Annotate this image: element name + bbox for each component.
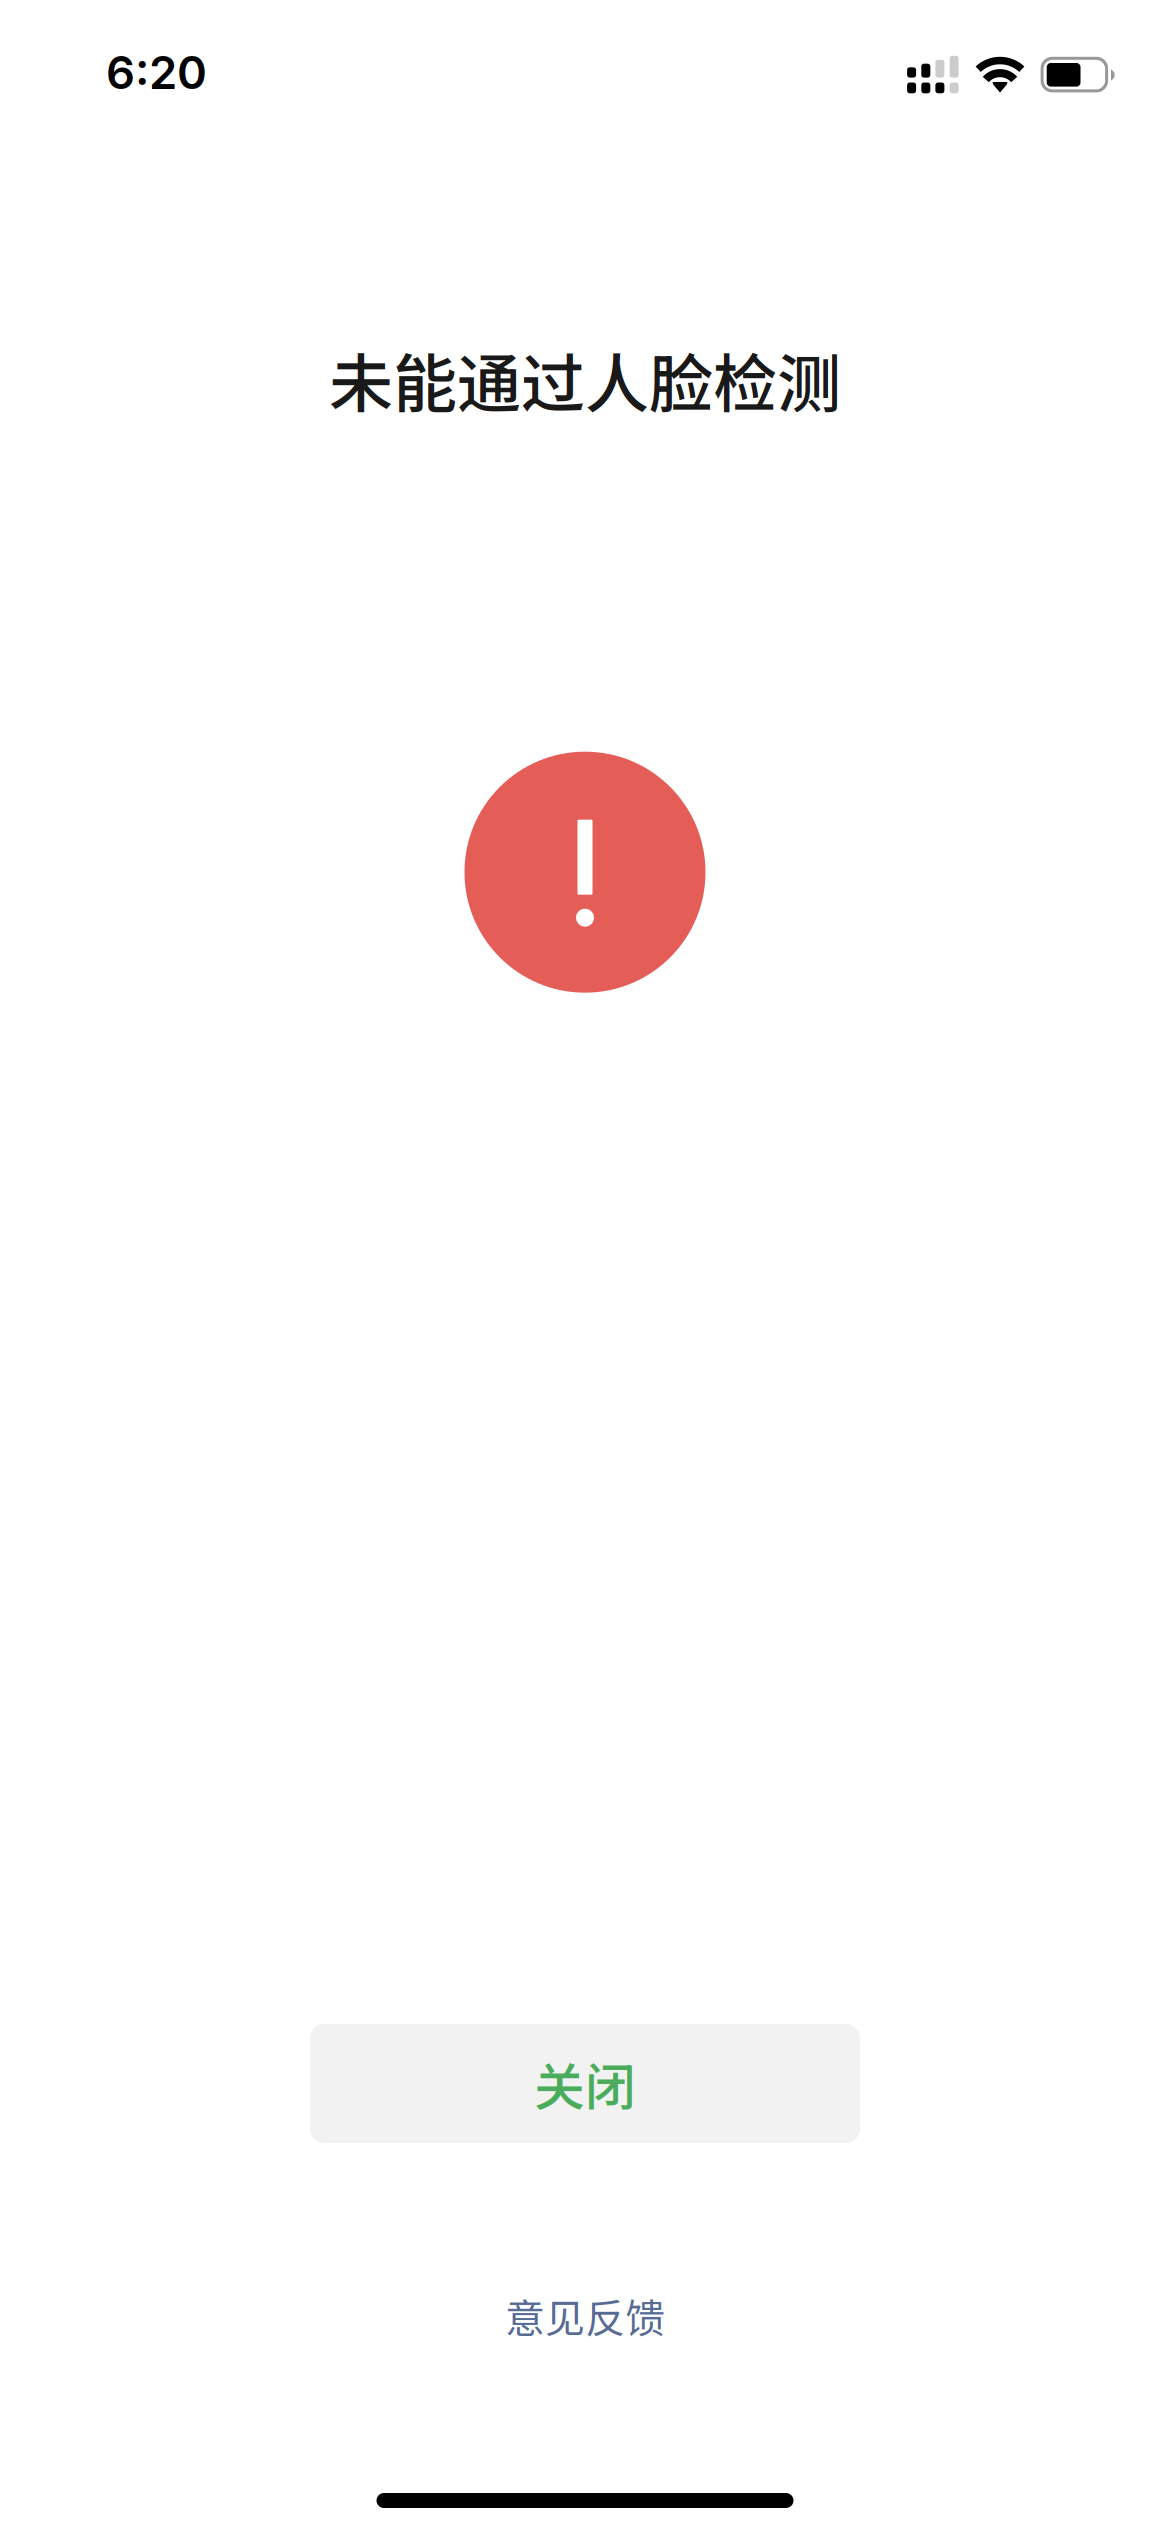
staticText: 未能通过人脸检测 <box>329 333 841 426</box>
staticText: 意见反馈 <box>505 2286 665 2344</box>
button[interactable]: 关闭 <box>310 2024 860 2143</box>
staticText: 6:20 <box>106 45 207 100</box>
staticText: 关闭 <box>534 2047 636 2120</box>
button[interactable]: 意见反馈 <box>465 2275 705 2355</box>
